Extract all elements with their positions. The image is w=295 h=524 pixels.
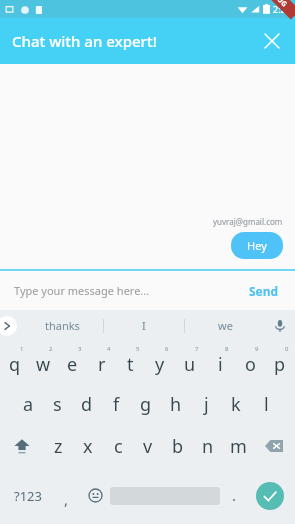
staticText: g bbox=[140, 392, 152, 417]
staticText: v bbox=[143, 434, 153, 459]
button[interactable]: Hey bbox=[231, 232, 283, 259]
staticText: z bbox=[54, 434, 63, 459]
button[interactable]: Emoji bbox=[81, 471, 110, 520]
staticText: k bbox=[231, 392, 241, 417]
staticText: yuvraj@gmail.com bbox=[213, 216, 283, 227]
button[interactable]: 9 bbox=[235, 341, 265, 383]
staticText: 2:24 bbox=[273, 3, 291, 15]
button[interactable]: 3 bbox=[58, 341, 87, 383]
button[interactable]: we bbox=[185, 310, 265, 341]
button[interactable]: h bbox=[161, 383, 191, 425]
button[interactable]: 7 bbox=[175, 341, 205, 383]
staticText: c bbox=[114, 434, 123, 459]
button[interactable]: More suggestions bbox=[0, 310, 22, 341]
button[interactable]: Send bbox=[247, 279, 281, 303]
staticText: 4 bbox=[107, 345, 111, 353]
staticText: , bbox=[64, 489, 69, 509]
button[interactable]: Shift bbox=[0, 425, 43, 467]
button[interactable]: a bbox=[14, 383, 43, 425]
button[interactable]: f bbox=[101, 383, 131, 425]
button[interactable]: 8 bbox=[205, 341, 235, 383]
button[interactable]: j bbox=[191, 383, 221, 425]
button[interactable]: s bbox=[43, 383, 72, 425]
staticText: . bbox=[232, 485, 237, 505]
button[interactable]: 5 bbox=[116, 341, 145, 383]
button[interactable]: 1 bbox=[0, 341, 29, 383]
staticText: Type your message here... bbox=[14, 283, 150, 298]
staticText: ?123 bbox=[14, 487, 42, 505]
staticText: 1 bbox=[20, 345, 24, 353]
button[interactable]: 0 bbox=[265, 341, 295, 383]
staticText: w bbox=[36, 352, 51, 377]
button[interactable]: I bbox=[104, 310, 184, 341]
button[interactable]: Enter bbox=[249, 471, 291, 520]
button[interactable]: 2 bbox=[29, 341, 58, 383]
staticText: 2 bbox=[49, 345, 53, 353]
button[interactable]: 4 bbox=[87, 341, 116, 383]
button[interactable]: l bbox=[251, 383, 281, 425]
staticText: u bbox=[184, 352, 196, 377]
staticText: m bbox=[230, 434, 247, 459]
button[interactable]: ?123 bbox=[4, 471, 52, 520]
staticText: Chat with an expert! bbox=[12, 31, 157, 51]
staticText: 8 bbox=[225, 345, 229, 353]
staticText: i bbox=[218, 352, 223, 377]
staticText: 3 bbox=[78, 345, 82, 353]
button[interactable]: g bbox=[131, 383, 161, 425]
staticText: Hey bbox=[247, 238, 267, 253]
staticText: n bbox=[202, 434, 214, 459]
button[interactable]: Backspace bbox=[253, 425, 295, 467]
button[interactable]: Close chat bbox=[257, 26, 287, 56]
button[interactable]: , bbox=[52, 471, 81, 520]
staticText: h bbox=[170, 392, 182, 417]
staticText: Send bbox=[249, 283, 279, 299]
staticText: x bbox=[83, 434, 93, 459]
button[interactable]: x bbox=[73, 425, 103, 467]
staticText: o bbox=[245, 352, 256, 377]
staticText: 0 bbox=[285, 345, 289, 353]
staticText: I bbox=[142, 318, 146, 333]
staticText: r bbox=[98, 352, 106, 377]
staticText: l bbox=[264, 392, 269, 417]
staticText: we bbox=[218, 318, 233, 333]
button[interactable]: d bbox=[72, 383, 101, 425]
staticText: j bbox=[204, 392, 209, 417]
staticText: f bbox=[113, 392, 120, 417]
staticText: 9 bbox=[255, 345, 259, 353]
staticText: a bbox=[23, 392, 34, 417]
staticText: d bbox=[81, 392, 93, 417]
staticText: q bbox=[9, 352, 21, 377]
staticText: 5 bbox=[136, 345, 140, 353]
staticText: p bbox=[274, 352, 286, 377]
staticText: thanks bbox=[45, 318, 80, 333]
button[interactable]: m bbox=[223, 425, 253, 467]
button[interactable]: Voice input bbox=[265, 310, 295, 341]
button[interactable]: thanks bbox=[22, 310, 103, 341]
button[interactable]: . bbox=[220, 471, 249, 520]
button[interactable]: n bbox=[193, 425, 223, 467]
staticText: 6 bbox=[165, 345, 169, 353]
button[interactable]: c bbox=[103, 425, 133, 467]
button[interactable]: 6 bbox=[145, 341, 175, 383]
staticText: e bbox=[67, 352, 78, 377]
staticText: t bbox=[127, 352, 134, 377]
button[interactable]: b bbox=[163, 425, 193, 467]
button[interactable]: z bbox=[43, 425, 73, 467]
staticText: b bbox=[172, 434, 184, 459]
button[interactable]: k bbox=[221, 383, 251, 425]
staticText: s bbox=[53, 392, 62, 417]
button[interactable]: v bbox=[133, 425, 163, 467]
staticText: y bbox=[155, 352, 165, 377]
staticText: DEBUG bbox=[265, 0, 289, 9]
button[interactable]: Type your message here... bbox=[14, 283, 247, 298]
staticText: 7 bbox=[195, 345, 199, 353]
